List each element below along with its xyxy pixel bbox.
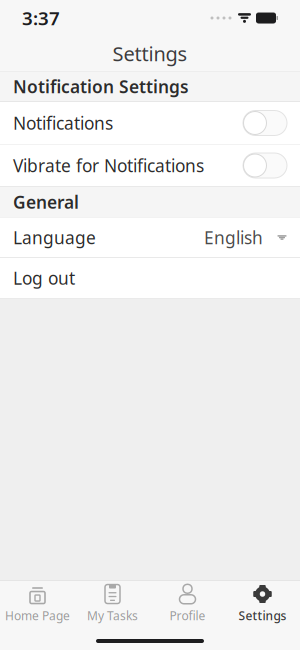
staticText: Log out	[13, 266, 75, 289]
button[interactable]: Vibrate for Notifications	[0, 144, 300, 186]
staticText: Home Page	[5, 607, 70, 623]
button[interactable]: Home Page	[0, 581, 75, 626]
staticText: Vibrate for Notifications	[13, 154, 204, 177]
staticText: Language	[13, 226, 96, 249]
staticText: Notification Settings	[13, 75, 189, 98]
button[interactable]: Log out	[0, 258, 300, 298]
button[interactable]: Settings	[225, 581, 300, 626]
staticText: Settings	[112, 40, 187, 67]
button[interactable]: Notifications	[0, 102, 300, 144]
staticText: General	[13, 190, 79, 213]
staticText: 3:37	[22, 6, 60, 30]
staticText: English	[204, 226, 263, 249]
staticText: Profile	[169, 607, 205, 623]
button[interactable]: Profile	[150, 581, 225, 626]
staticText: Settings	[238, 607, 286, 623]
button[interactable]: My Tasks	[75, 581, 150, 626]
staticText: Notifications	[13, 111, 113, 134]
button[interactable]: Language	[0, 217, 300, 257]
staticText: My Tasks	[87, 607, 138, 623]
